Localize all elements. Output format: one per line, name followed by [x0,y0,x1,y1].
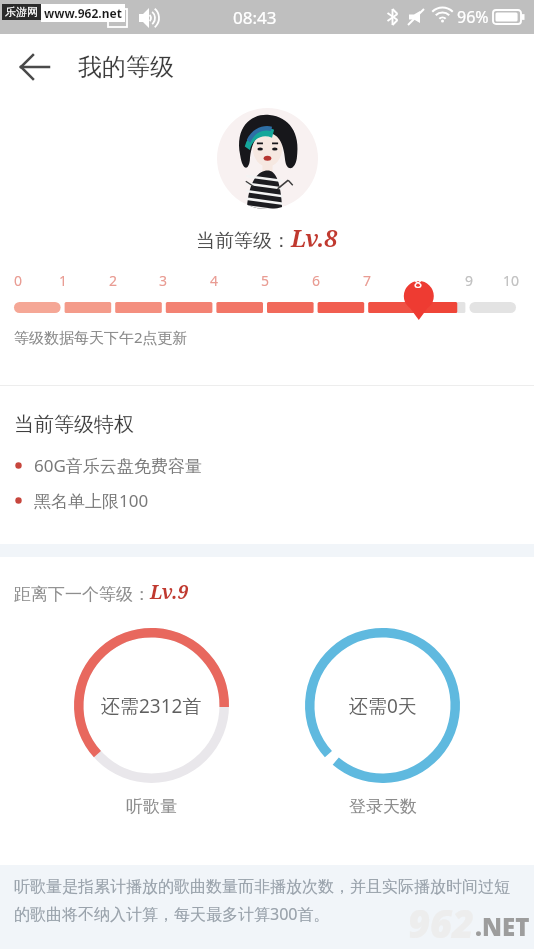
staticText: 距离下一个等级： [14,584,150,605]
staticText: 10 [503,271,520,290]
staticText: 等级数据每天下午2点更新 [14,327,188,347]
staticText: 当前等级： [196,229,291,253]
staticText: 还需0天 [349,693,417,719]
staticText: 3 [159,271,168,290]
staticText: 08:43 [233,6,277,29]
staticText: Lv.8 [291,222,338,253]
staticText: 4 [210,271,219,290]
button[interactable]: 还需0天 [304,627,461,817]
staticText: 6 [312,271,321,290]
staticText: 听歌量 [126,796,177,817]
staticText: 听歌量是指累计播放的歌曲数量而非播放次数，并且实际播放时间过短的歌曲将不纳入计算… [14,877,520,925]
staticText: 乐游网 [5,5,38,19]
staticText: 9 [465,271,474,290]
staticText: 962 [408,897,475,949]
button[interactable]: Back [10,42,60,92]
staticText: 60G音乐云盘免费容量 [34,454,202,477]
staticText: 7 [363,271,372,290]
staticText: 2 [109,271,118,290]
staticText: 黑名单上限100 [34,489,149,512]
button[interactable]: 还需2312首 [73,627,230,817]
staticText: 0 [14,271,23,290]
staticText: 8 [414,273,423,292]
staticText: 登录天数 [349,796,417,817]
staticText: Lv.9 [150,579,189,605]
staticText: 1 [59,271,68,290]
staticText: 还需2312首 [101,693,202,719]
staticText: 当前等级特权 [14,412,134,437]
staticText: 96% [457,6,489,28]
staticText: 我的等级 [78,52,174,82]
staticText: www.962.net [44,5,122,21]
staticText: .NET [475,910,530,943]
staticText: 5 [261,271,270,290]
